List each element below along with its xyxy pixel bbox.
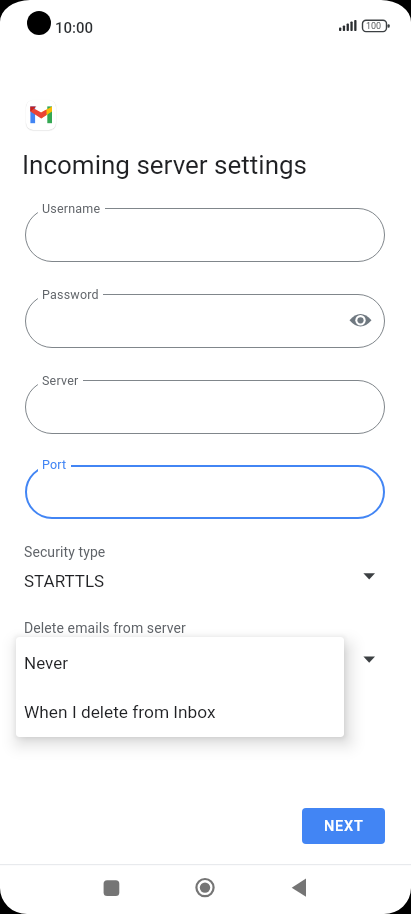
button[interactable]: NEXT bbox=[302, 808, 385, 844]
staticText: Server bbox=[42, 373, 79, 388]
button[interactable] bbox=[25, 380, 385, 434]
staticText: 10:00 bbox=[55, 19, 94, 37]
staticText: NEXT bbox=[324, 818, 364, 835]
staticText: Incoming server settings bbox=[22, 150, 308, 180]
button[interactable] bbox=[86, 864, 146, 914]
button[interactable] bbox=[16, 538, 395, 598]
staticText: Username bbox=[42, 201, 101, 216]
staticText: Never bbox=[24, 653, 68, 673]
staticText: 100 bbox=[366, 21, 382, 32]
button[interactable] bbox=[25, 465, 385, 519]
staticText: When I delete from Inbox bbox=[24, 702, 216, 722]
button[interactable] bbox=[25, 294, 385, 348]
staticText: Delete emails from server bbox=[24, 620, 186, 636]
staticText: Password bbox=[42, 287, 99, 302]
button[interactable] bbox=[175, 864, 235, 914]
button[interactable] bbox=[16, 614, 395, 674]
button[interactable] bbox=[16, 637, 344, 686]
staticText: STARTTLS bbox=[24, 571, 105, 591]
button[interactable] bbox=[16, 687, 344, 736]
button[interactable] bbox=[25, 208, 385, 262]
staticText: Port bbox=[42, 457, 67, 472]
button[interactable] bbox=[266, 864, 326, 914]
staticText: Security type bbox=[24, 544, 106, 560]
